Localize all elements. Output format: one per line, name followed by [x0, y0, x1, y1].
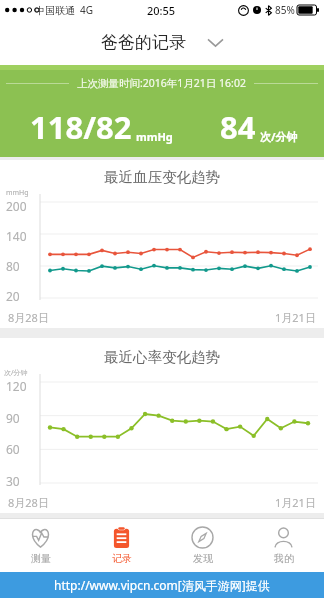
- staticText: mmHg: [6, 188, 29, 198]
- staticText: 我的: [274, 552, 294, 565]
- staticText: 85%: [275, 3, 295, 17]
- staticText: 20: [6, 288, 20, 304]
- staticText: 次/分钟: [4, 368, 28, 378]
- staticText: 8月28日: [8, 495, 49, 510]
- button[interactable]: 爸爸的记录: [0, 20, 324, 65]
- staticText: http://www.vipcn.com[清风手游网]提供: [54, 577, 270, 593]
- staticText: 爸爸的记录: [101, 32, 186, 53]
- staticText: 140: [6, 228, 27, 244]
- staticText: 最近血压变化趋势: [0, 168, 324, 186]
- staticText: 120: [6, 378, 27, 394]
- other: Select record: [208, 38, 223, 47]
- staticText: 200: [6, 198, 27, 214]
- button[interactable]: Discover: [162, 518, 243, 572]
- staticText: 1月21日: [275, 495, 316, 510]
- other: Profile: [272, 526, 295, 549]
- staticText: 发现: [193, 552, 213, 565]
- other: Records: [110, 526, 133, 549]
- staticText: 90: [6, 410, 20, 426]
- staticText: 测量: [31, 552, 51, 565]
- button[interactable]: Profile: [243, 518, 324, 572]
- staticText: 记录: [112, 552, 132, 565]
- staticText: 80: [6, 258, 20, 274]
- staticText: 60: [6, 441, 20, 457]
- staticText: 4G: [80, 3, 93, 17]
- staticText: 30: [6, 473, 20, 489]
- staticText: 84: [220, 106, 256, 148]
- staticText: mmHg: [136, 129, 173, 144]
- staticText: 20:55: [147, 3, 176, 18]
- button[interactable]: Records: [81, 518, 162, 572]
- staticText: 8月28日: [8, 310, 49, 325]
- other: Discover: [191, 526, 214, 549]
- staticText: 中国联通: [35, 4, 75, 17]
- staticText: 上次测量时间:2016年1月21日 16:02: [77, 76, 246, 90]
- button[interactable]: Measure: [0, 518, 81, 572]
- staticText: 最近心率变化趋势: [0, 348, 324, 366]
- staticText: 1月21日: [275, 310, 316, 325]
- staticText: 118/82: [30, 106, 132, 148]
- staticText: 次/分钟: [260, 129, 298, 144]
- other: Measure: [29, 526, 52, 549]
